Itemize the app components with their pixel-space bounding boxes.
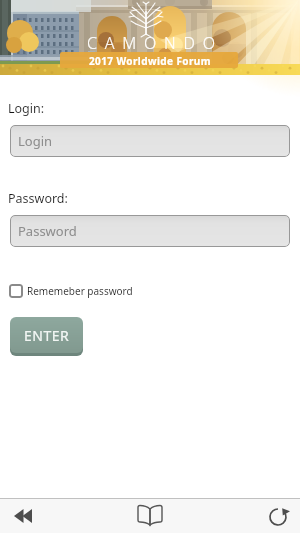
staticText: Rememeber password: [27, 284, 133, 298]
button[interactable]: Rememeber password: [9, 284, 133, 298]
staticText: Login: [18, 132, 53, 150]
staticText: Login:: [8, 100, 45, 117]
staticText: 2017 Worldwide Forum: [89, 54, 211, 68]
button[interactable]: Password: [10, 215, 290, 247]
button[interactable]: [200, 498, 300, 533]
staticText: Password: [18, 222, 77, 240]
staticText: Password:: [8, 190, 68, 207]
button[interactable]: [0, 498, 100, 533]
button[interactable]: ENTER: [10, 317, 83, 353]
button[interactable]: Login: [10, 125, 290, 157]
button[interactable]: [100, 498, 200, 533]
staticText: ENTER: [24, 326, 70, 345]
staticText: CAMONDO: [87, 32, 223, 54]
